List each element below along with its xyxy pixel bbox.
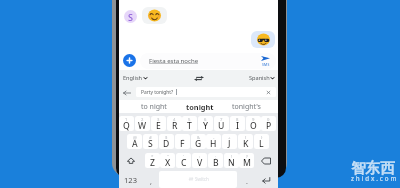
staticText: A — [132, 138, 138, 149]
staticText: Fiesta esta noche — [149, 57, 199, 65]
staticText: " — [167, 154, 169, 160]
staticText: tonight's — [232, 102, 261, 112]
staticText: 1 — [125, 117, 128, 123]
button[interactable]: 2 — [135, 116, 150, 131]
staticText: Spanish — [249, 74, 270, 82]
button[interactable]: & — [191, 134, 206, 149]
button[interactable]: to night — [132, 100, 176, 113]
staticText: ) — [261, 135, 263, 141]
button[interactable]: Sunglasses emoji message — [251, 31, 275, 48]
button[interactable]: Enter — [255, 171, 277, 188]
button[interactable]: Swap languages — [193, 72, 205, 84]
button[interactable]: . — [238, 171, 255, 188]
button[interactable]: 8 — [230, 116, 245, 131]
staticText: 9 — [252, 117, 255, 123]
staticText: K — [243, 138, 249, 149]
staticText: 7 — [220, 117, 223, 123]
button[interactable]: Backspace — [255, 153, 277, 168]
button[interactable]: Space — [159, 171, 237, 188]
staticText: E — [156, 120, 161, 131]
staticText: F — [180, 138, 185, 149]
button[interactable]: Back — [122, 88, 132, 98]
button[interactable]: Send SMS — [254, 53, 276, 69]
staticText: ! — [231, 154, 233, 160]
button[interactable]: Add — [123, 54, 136, 67]
staticText: H — [210, 138, 217, 149]
button[interactable]: , — [143, 171, 159, 188]
staticText: R — [172, 120, 178, 131]
staticText: : — [199, 154, 201, 160]
staticText: D — [163, 138, 170, 149]
button[interactable]: Fiesta esta noche — [140, 53, 276, 69]
staticText: ( — [245, 135, 247, 141]
button[interactable]: - — [206, 134, 221, 149]
staticText: V — [197, 157, 203, 168]
staticText: W — [138, 120, 147, 131]
staticText: T — [187, 120, 192, 131]
button[interactable]: ( — [238, 134, 253, 149]
button[interactable]: ' — [176, 153, 191, 168]
button[interactable]: : — [192, 153, 207, 168]
button[interactable]: tonight's — [224, 100, 268, 113]
staticText: . — [246, 177, 248, 187]
button[interactable]: 3 — [151, 116, 166, 131]
staticText: $ — [165, 135, 168, 141]
staticText: @ — [133, 135, 137, 141]
button[interactable]: # — [143, 134, 158, 149]
staticText: 2 — [141, 117, 144, 123]
staticText: L — [259, 138, 264, 149]
staticText: _ — [182, 135, 184, 141]
button[interactable]: _ — [175, 134, 190, 149]
button[interactable]: tonight — [178, 100, 222, 113]
staticText: to night — [141, 102, 167, 112]
staticText: Switch — [195, 176, 209, 182]
staticText: - — [213, 135, 215, 141]
button[interactable]: Spanish — [247, 73, 277, 83]
staticText: 8 — [236, 117, 239, 123]
staticText: tonight — [186, 102, 214, 112]
staticText: zhidx.com — [351, 174, 399, 182]
button[interactable]: English — [121, 73, 150, 83]
staticText: X — [165, 157, 171, 168]
staticText: , — [150, 177, 152, 187]
button[interactable]: + — [222, 134, 237, 149]
staticText: Q — [123, 120, 130, 131]
button[interactable]: 7 — [214, 116, 229, 131]
staticText: 5 — [188, 117, 191, 123]
button[interactable]: * — [145, 153, 160, 168]
button[interactable]: Party tonight? — [136, 87, 276, 97]
staticText: P — [266, 120, 272, 131]
button[interactable]: Smiling emoji message — [142, 7, 167, 24]
staticText: Party tonight? — [141, 89, 174, 96]
button[interactable]: 6 — [198, 116, 213, 131]
staticText: B — [213, 157, 219, 168]
staticText: Z — [150, 157, 155, 168]
button[interactable]: ? — [239, 153, 254, 168]
button[interactable]: 123 — [119, 171, 143, 188]
staticText: 智东西 — [351, 159, 395, 177]
button[interactable]: " — [160, 153, 175, 168]
staticText: English — [123, 74, 143, 82]
button[interactable]: @ — [127, 134, 142, 149]
button[interactable]: Shift — [119, 153, 143, 168]
staticText: Y — [203, 120, 209, 131]
button[interactable]: 5 — [182, 116, 197, 131]
staticText: ; — [215, 154, 217, 160]
staticText: # — [149, 135, 152, 141]
staticText: 123 — [124, 175, 138, 185]
staticText: 4 — [173, 117, 176, 123]
staticText: & — [197, 135, 201, 141]
button[interactable]: ; — [208, 153, 223, 168]
staticText: S — [148, 138, 153, 149]
button[interactable]: 4 — [167, 116, 182, 131]
button[interactable]: ) — [254, 134, 269, 149]
staticText: SMS — [262, 62, 270, 67]
button[interactable]: $ — [159, 134, 174, 149]
button[interactable]: ! — [224, 153, 239, 168]
staticText: * — [151, 154, 154, 160]
button[interactable]: 1 — [119, 116, 134, 131]
button[interactable]: 9 — [246, 116, 261, 131]
button[interactable]: 0 — [261, 116, 276, 131]
staticText: C — [181, 157, 187, 168]
staticText: G — [195, 138, 202, 149]
